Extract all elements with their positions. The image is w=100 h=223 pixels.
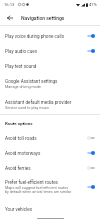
staticText: Route options xyxy=(5,121,33,126)
staticText: Navigation settings xyxy=(21,15,65,21)
button[interactable]: Toggle xyxy=(87,31,95,41)
button[interactable]: Play test sound xyxy=(0,59,100,73)
staticText: Your vehicles xyxy=(5,207,33,212)
staticText: Play audio cues xyxy=(5,49,87,54)
button[interactable]: Toggle xyxy=(87,182,95,192)
button[interactable]: Your vehicles xyxy=(0,202,100,216)
button[interactable]: Assistant default media provider xyxy=(0,95,100,115)
button[interactable]: Avoid toll roads xyxy=(0,131,100,145)
staticText: Play voice during phone calls xyxy=(5,34,87,39)
button[interactable]: Play voice during phone calls xyxy=(0,29,100,43)
staticText: Manage driving mode xyxy=(5,85,42,89)
staticText: Play test sound xyxy=(5,64,37,69)
button[interactable]: Toggle xyxy=(87,148,95,158)
staticText: Assistant default media provider xyxy=(5,100,72,105)
staticText: 16:13 xyxy=(4,2,15,7)
button[interactable]: Play audio cues xyxy=(0,44,100,58)
staticText: Avoid motorways xyxy=(5,151,87,156)
staticText: Maps will suggest fuel-efficient routes … xyxy=(5,186,72,194)
button[interactable]: Toggle xyxy=(87,163,95,173)
staticText: 47% xyxy=(89,2,97,7)
button[interactable]: Avoid ferries xyxy=(0,161,100,175)
staticText: Google Assistant settings xyxy=(5,79,58,84)
button[interactable]: Avoid motorways xyxy=(0,146,100,160)
staticText: Avoid ferries xyxy=(5,166,87,171)
staticText: Avoid toll roads xyxy=(5,136,87,141)
button[interactable]: Toggle xyxy=(87,46,95,56)
button[interactable]: Prefer fuel-efficient routes xyxy=(0,175,100,199)
button[interactable]: Back xyxy=(2,10,17,25)
button[interactable]: Toggle xyxy=(87,133,95,143)
button[interactable]: Google Assistant settings xyxy=(0,74,100,94)
staticText: Service used to play music xyxy=(5,106,50,110)
staticText: Prefer fuel-efficient routes xyxy=(5,180,58,185)
